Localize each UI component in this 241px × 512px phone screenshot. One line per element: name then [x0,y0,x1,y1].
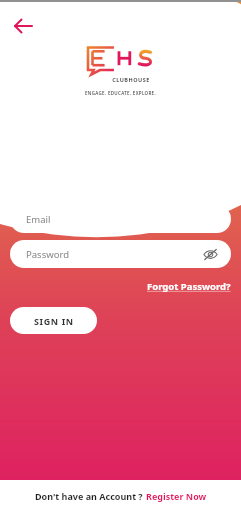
button[interactable]: Forgot Password? [137,278,241,295]
staticText: SIGN IN [34,315,74,327]
button[interactable]: Password [10,240,231,268]
button[interactable]: SIGN IN [10,307,97,334]
staticText: Email [26,213,51,226]
staticText: Register Now [146,490,207,502]
staticText: Forgot Password? [147,280,231,293]
staticText: CLUBHOUSE [112,76,150,83]
button[interactable]: Back [10,13,36,39]
staticText: Don't have an Account ? [35,490,146,502]
staticText: ENGAGE. EDUCATE. EXPLORE. [85,90,156,96]
button[interactable]: Show password [199,243,221,265]
button[interactable]: Don't have an Account ? [0,480,241,512]
staticText: Password [26,248,69,261]
button[interactable]: Email [10,205,231,233]
